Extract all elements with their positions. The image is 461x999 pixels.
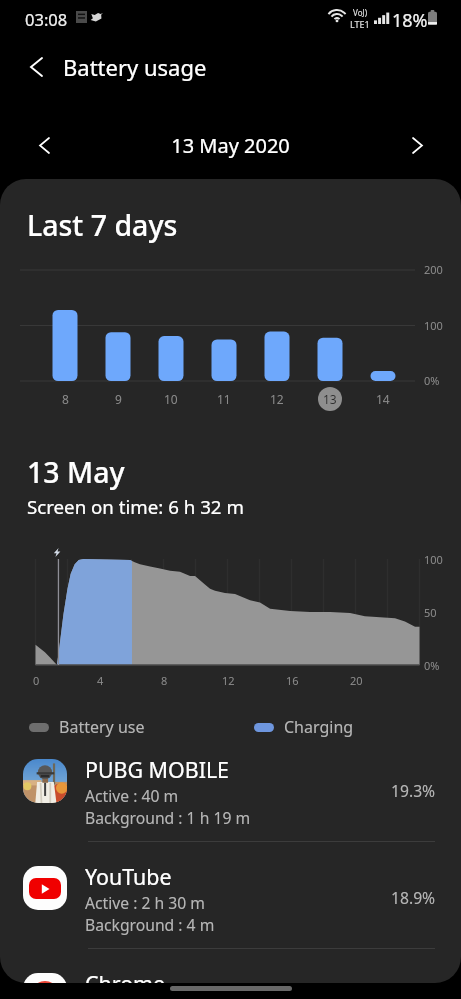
staticText: 11	[217, 391, 231, 407]
staticText: 8	[62, 391, 69, 407]
staticText: Charging	[284, 716, 354, 738]
staticText: Chrome	[85, 969, 166, 983]
staticText: 8	[161, 673, 168, 688]
staticText: 4	[97, 673, 104, 688]
staticText: Last 7 days	[27, 206, 178, 245]
button[interactable]: Back	[14, 45, 58, 89]
staticText: Background : 4 m	[85, 914, 215, 935]
button[interactable]: PUBG MOBILE	[0, 735, 461, 842]
staticText: 100	[424, 318, 443, 333]
button[interactable]: Battery use	[29, 710, 461, 744]
staticText: 16	[286, 673, 299, 688]
staticText: Screen on time: 6 h 32 m	[27, 494, 244, 519]
staticText: 03:08	[25, 8, 68, 30]
staticText: Battery use	[59, 716, 145, 738]
staticText: 18.9%	[391, 887, 436, 908]
button[interactable]: Chrome	[0, 949, 461, 983]
staticText: VoJ)	[353, 7, 368, 18]
staticText: 100	[424, 552, 443, 567]
staticText: LTE1	[350, 18, 370, 30]
staticText: Battery usage	[63, 52, 207, 82]
staticText: 10	[164, 391, 178, 407]
staticText: PUBG MOBILE	[85, 755, 229, 784]
staticText: 0%	[424, 373, 440, 388]
button[interactable]: Previous day	[22, 123, 66, 167]
button[interactable]: Charging	[254, 710, 461, 744]
staticText: 0%	[424, 658, 440, 673]
staticText: 9	[115, 391, 122, 407]
staticText: 20	[350, 673, 363, 688]
button[interactable]: Next day	[395, 123, 439, 167]
staticText: Background : 1 h 19 m	[85, 807, 251, 828]
staticText: 14	[376, 391, 390, 407]
button[interactable]: YouTube	[0, 842, 461, 949]
staticText: Active : 40 m	[85, 785, 179, 806]
staticText: 12	[270, 391, 284, 407]
staticText: 13 May 2020	[0, 132, 461, 159]
staticText: 0	[33, 673, 40, 688]
staticText: 13	[323, 391, 337, 407]
staticText: 19.3%	[391, 780, 436, 801]
staticText: YouTube	[85, 862, 172, 891]
staticText: 50	[424, 605, 437, 620]
staticText: Active : 2 h 30 m	[85, 892, 205, 913]
staticText: 200	[424, 262, 443, 277]
staticText: 12	[222, 673, 235, 688]
staticText: 13 May	[27, 453, 125, 492]
staticText: 18%	[392, 8, 428, 33]
